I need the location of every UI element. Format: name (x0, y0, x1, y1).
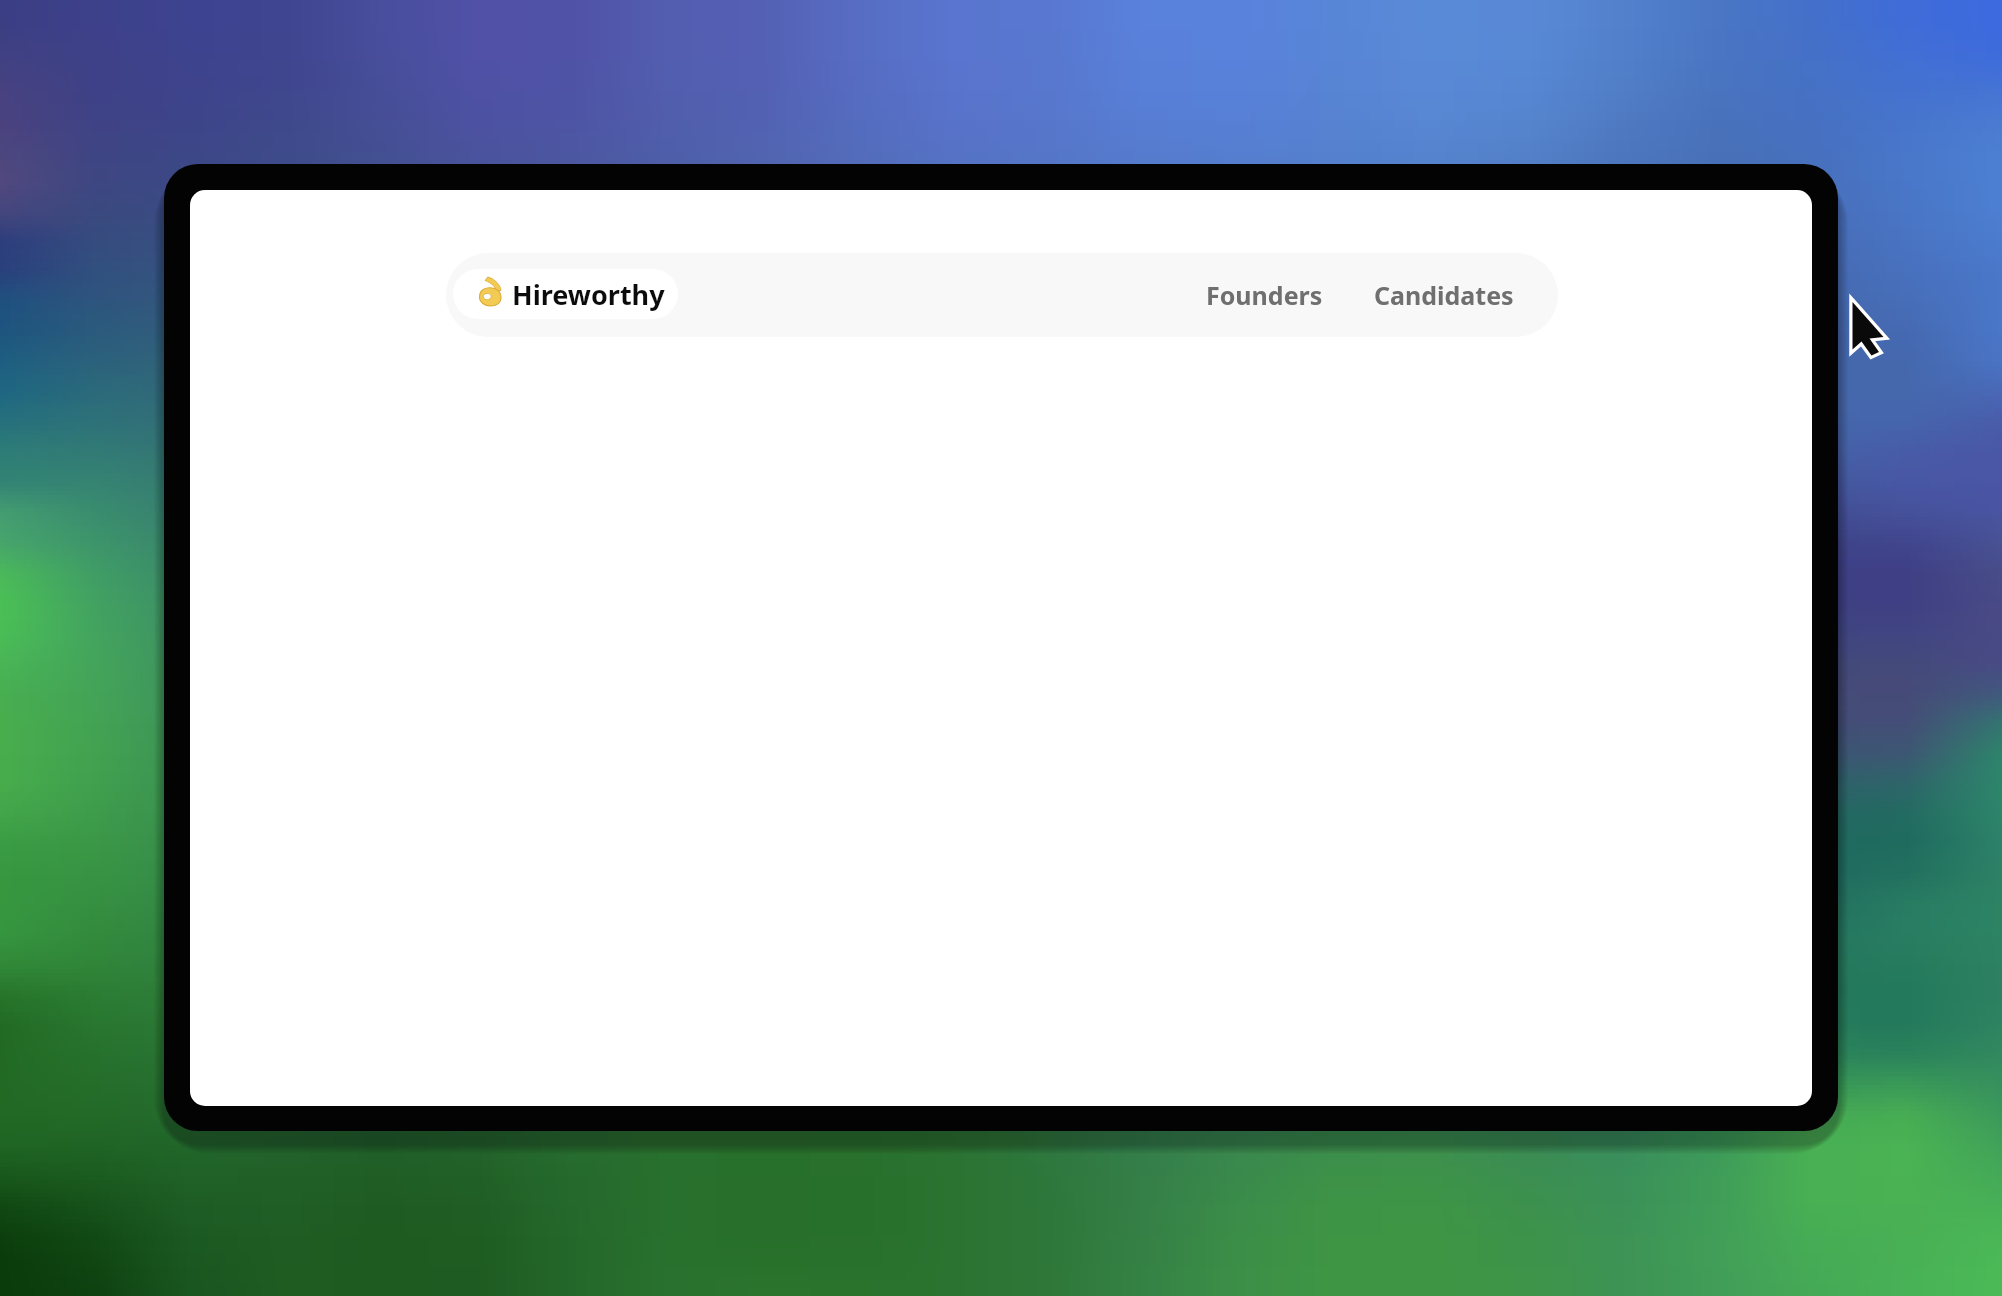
button[interactable]: Candidates (1358, 271, 1530, 319)
staticText: Founders (1206, 278, 1323, 312)
staticText: Hireworthy (512, 276, 665, 313)
staticText: Candidates (1374, 278, 1514, 312)
button[interactable]: Hireworthy logo (453, 269, 678, 319)
other: Hireworthy logo (479, 277, 501, 306)
button[interactable]: Founders (1190, 271, 1338, 319)
